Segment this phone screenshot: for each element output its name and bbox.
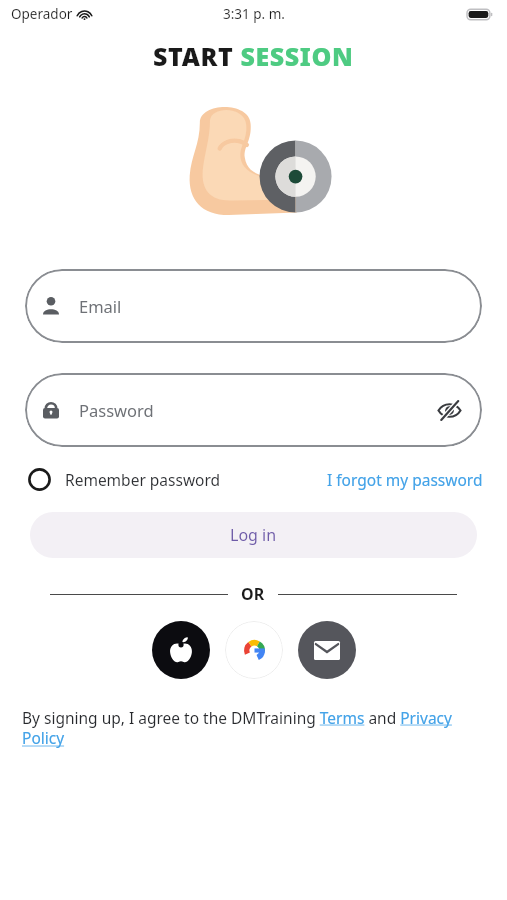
staticText: Log in xyxy=(230,524,277,546)
button[interactable]: Remember password xyxy=(28,464,221,495)
button[interactable]: Show password xyxy=(437,400,462,421)
button[interactable]: By signing up, I agree to the DMTraining… xyxy=(22,707,489,749)
button[interactable]: Sign in with Apple xyxy=(152,621,210,679)
staticText: START SESSION xyxy=(153,39,354,73)
button[interactable]: I forgot my password xyxy=(327,465,483,494)
staticText: By signing up, I agree to the DMTraining… xyxy=(22,707,489,749)
button[interactable]: Sign in with email xyxy=(298,621,356,679)
staticText: Operador xyxy=(11,5,73,23)
staticText: Password xyxy=(79,399,154,421)
staticText: Remember password xyxy=(65,469,221,490)
staticText: 3:31 p. m. xyxy=(223,5,285,23)
button[interactable]: Log in xyxy=(30,512,477,558)
staticText: Email xyxy=(79,295,122,317)
staticText: OR xyxy=(241,583,265,605)
button[interactable]: Password xyxy=(25,373,482,447)
staticText: I forgot my password xyxy=(327,469,483,490)
button[interactable]: Email xyxy=(25,269,482,343)
button[interactable]: Sign in with Google xyxy=(225,621,283,679)
